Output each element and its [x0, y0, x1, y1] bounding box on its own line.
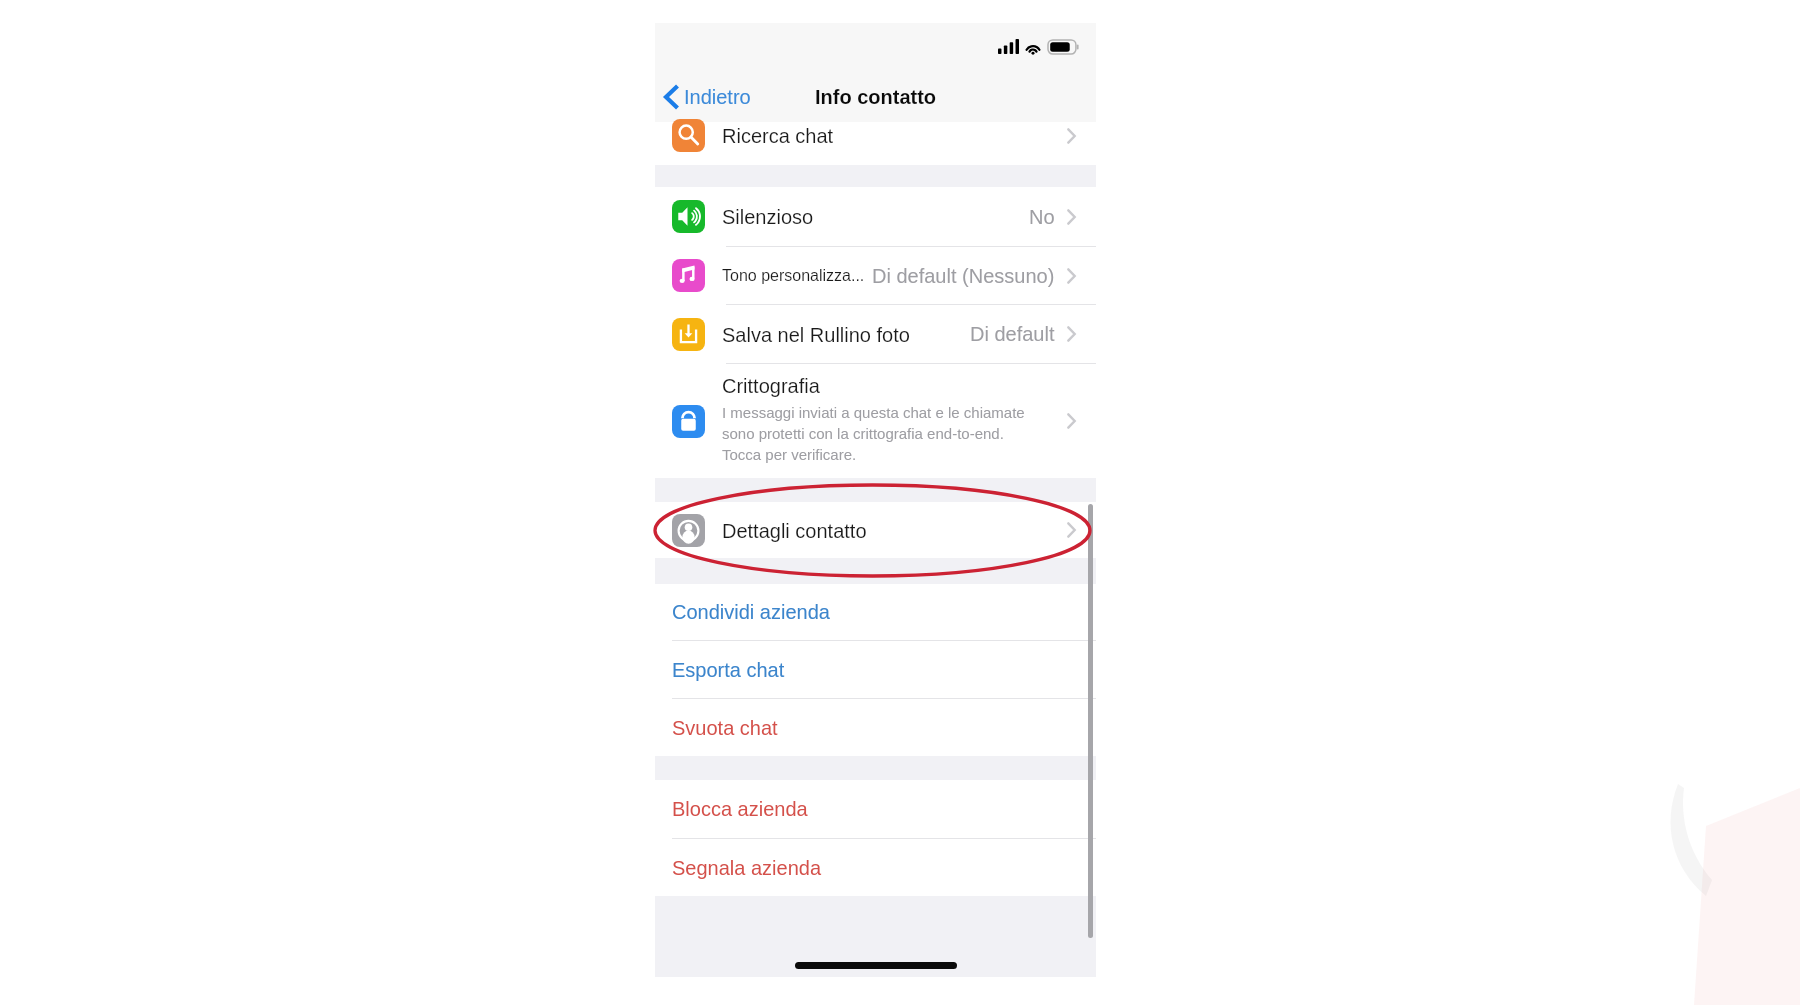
- other: Apri: [1067, 326, 1076, 342]
- button[interactable]: Condividi azienda: [655, 584, 1096, 640]
- staticText: Blocca azienda: [672, 798, 808, 820]
- other: Apri: [1067, 413, 1076, 429]
- staticText: Di default (Nessuno): [872, 265, 1055, 287]
- button[interactable]: Crittografia: [655, 364, 1096, 478]
- staticText: Salva nel Rullino foto: [722, 324, 910, 346]
- staticText: Condividi azienda: [672, 601, 830, 623]
- button[interactable]: Salva nel Rullino foto: [655, 305, 1096, 363]
- button[interactable]: Svuota chat: [655, 699, 1096, 756]
- staticText: Info contatto: [815, 86, 937, 108]
- other: Apri: [1067, 522, 1076, 538]
- other: Apri: [1067, 209, 1076, 225]
- staticText: Ricerca chat: [722, 125, 834, 147]
- button[interactable]: Ricerca chat: [655, 122, 1096, 165]
- other: Apri: [1067, 268, 1076, 284]
- button[interactable]: Silenzioso: [655, 187, 1096, 246]
- staticText: Di default: [970, 323, 1055, 345]
- staticText: Dettagli contatto: [722, 520, 867, 542]
- button[interactable]: Dettagli contatto: [655, 502, 1096, 558]
- button[interactable]: Segnala azienda: [655, 839, 1096, 896]
- staticText: Crittografia: [722, 375, 820, 397]
- button[interactable]: Tono personalizza...: [655, 247, 1096, 304]
- other: Apri: [1067, 128, 1076, 144]
- staticText: Tono personalizza...: [722, 267, 865, 285]
- staticText: Indietro: [684, 86, 751, 108]
- button[interactable]: Blocca azienda: [655, 780, 1096, 838]
- button[interactable]: Esporta chat: [655, 641, 1096, 698]
- staticText: Esporta chat: [672, 659, 785, 681]
- staticText: I messaggi inviati a questa chat e le ch…: [722, 404, 1025, 463]
- staticText: No: [1029, 206, 1055, 228]
- staticText: Svuota chat: [672, 717, 778, 739]
- staticText: Segnala azienda: [672, 857, 822, 879]
- button[interactable]: Indietro: [664, 84, 751, 110]
- staticText: Silenzioso: [722, 206, 814, 228]
